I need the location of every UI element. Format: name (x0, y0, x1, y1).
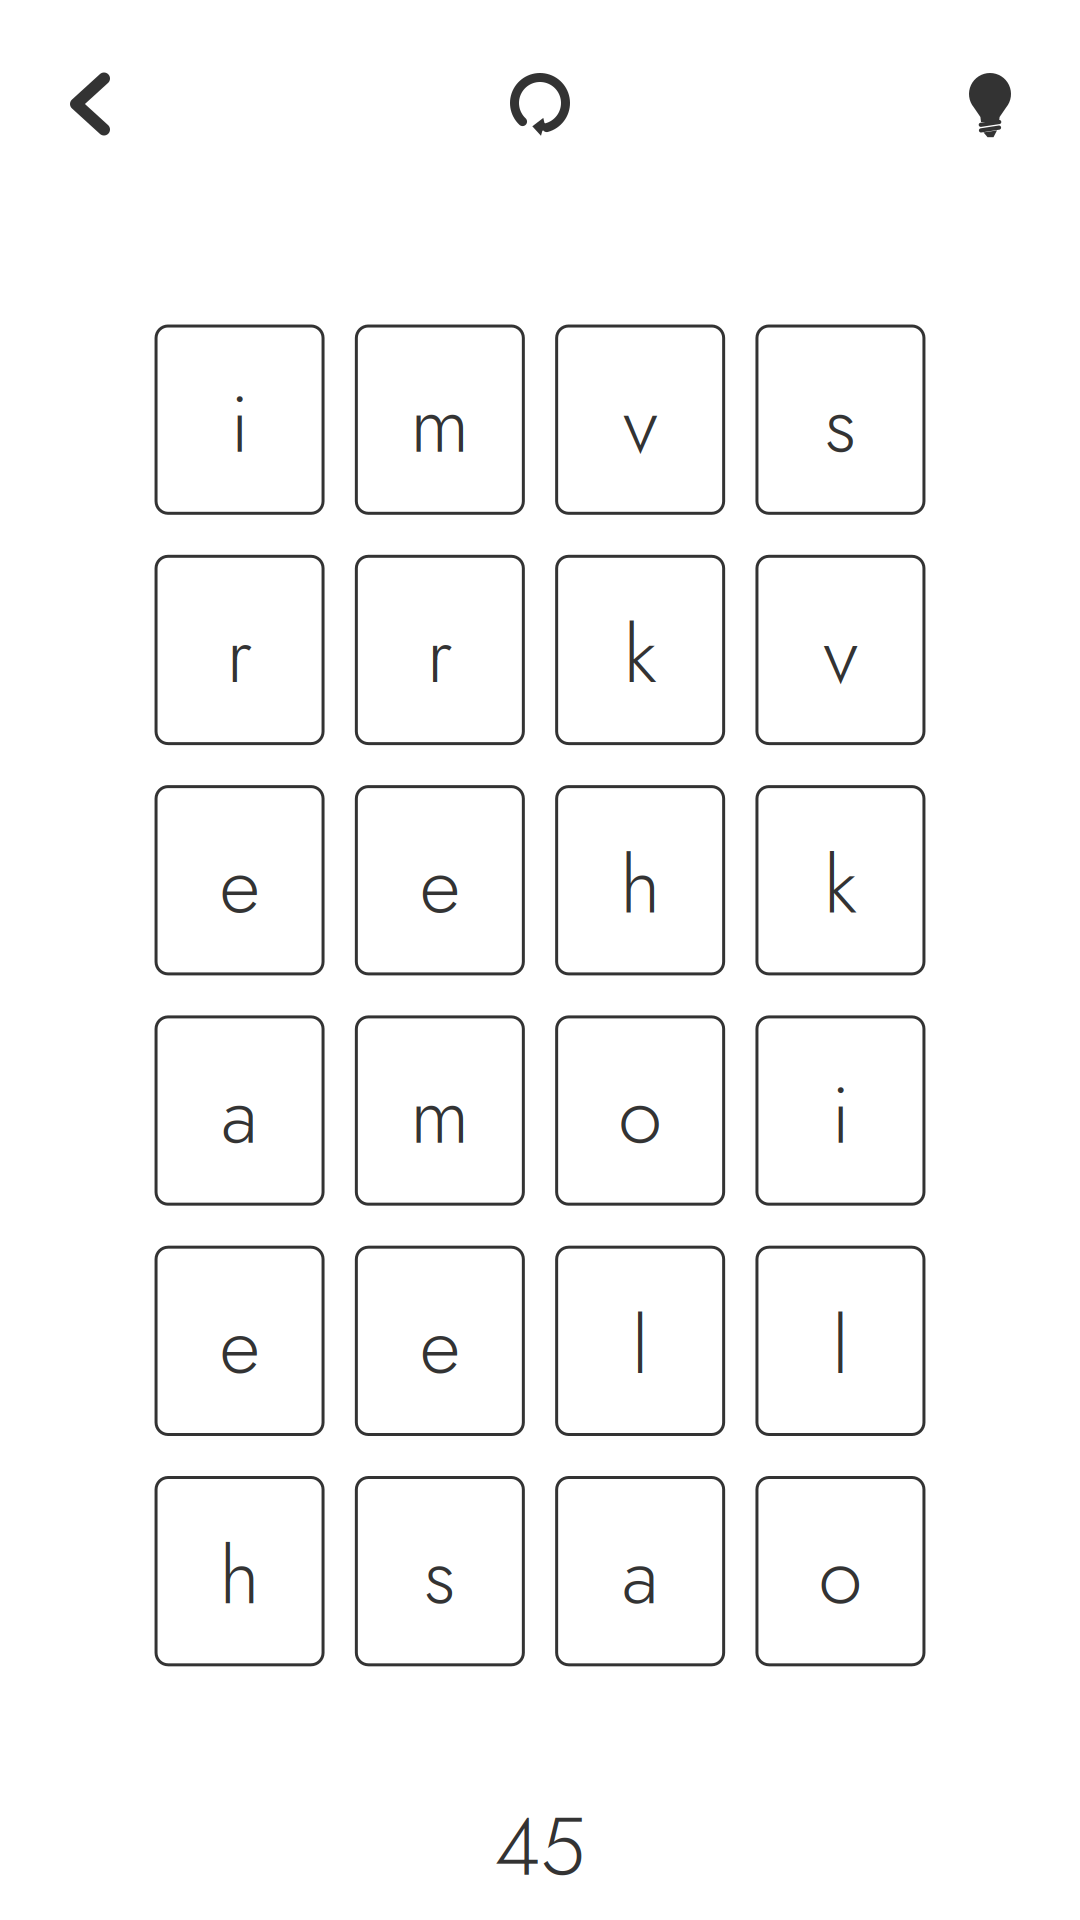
button[interactable]: k (757, 787, 924, 974)
staticText: v (823, 597, 857, 712)
staticText: e (220, 827, 260, 942)
button[interactable]: l (557, 1247, 724, 1434)
staticText: i (831, 1058, 849, 1172)
staticText: r (427, 597, 453, 712)
button[interactable]: s (356, 1477, 523, 1665)
staticText: m (410, 367, 469, 481)
staticText: a (622, 1518, 659, 1633)
button[interactable]: m (356, 1017, 523, 1204)
button[interactable]: s (757, 326, 924, 513)
staticText: s (424, 1518, 456, 1633)
staticText: e (420, 1288, 460, 1403)
staticText: k (624, 597, 657, 712)
staticText: m (410, 1058, 469, 1172)
staticText: s (824, 367, 856, 481)
staticText: a (221, 1058, 258, 1172)
button[interactable]: l (757, 1247, 924, 1434)
button[interactable]: h (156, 1477, 323, 1665)
button[interactable]: a (156, 1017, 323, 1204)
staticText: l (832, 1288, 849, 1403)
button[interactable]: o (557, 1017, 724, 1204)
staticText: v (623, 367, 657, 481)
button[interactable]: r (156, 556, 323, 744)
staticText: k (824, 827, 857, 942)
staticText: i (231, 367, 249, 481)
staticText: h (620, 827, 660, 942)
button[interactable]: v (757, 556, 924, 744)
button[interactable]: e (156, 1247, 323, 1434)
staticText: r (227, 597, 253, 712)
button[interactable]: Hint (955, 65, 1025, 143)
button[interactable]: h (557, 787, 724, 974)
button[interactable]: o (757, 1477, 924, 1665)
button[interactable]: v (557, 326, 724, 513)
button[interactable]: e (156, 787, 323, 974)
button[interactable]: r (356, 556, 523, 744)
button[interactable]: k (557, 556, 724, 744)
staticText: l (632, 1288, 649, 1403)
staticText: o (618, 1058, 662, 1172)
button[interactable]: a (557, 1477, 724, 1665)
button[interactable]: Back (55, 65, 125, 143)
staticText: o (818, 1518, 862, 1633)
staticText: e (220, 1288, 260, 1403)
staticText: h (220, 1518, 260, 1633)
button[interactable]: Shuffle letters (505, 65, 575, 143)
button[interactable]: e (356, 1247, 523, 1434)
staticText: 45 (494, 1789, 585, 1905)
button[interactable]: i (757, 1017, 924, 1204)
button[interactable]: i (156, 326, 323, 513)
button[interactable]: m (356, 326, 523, 513)
button[interactable]: e (356, 787, 523, 974)
staticText: e (420, 827, 460, 942)
